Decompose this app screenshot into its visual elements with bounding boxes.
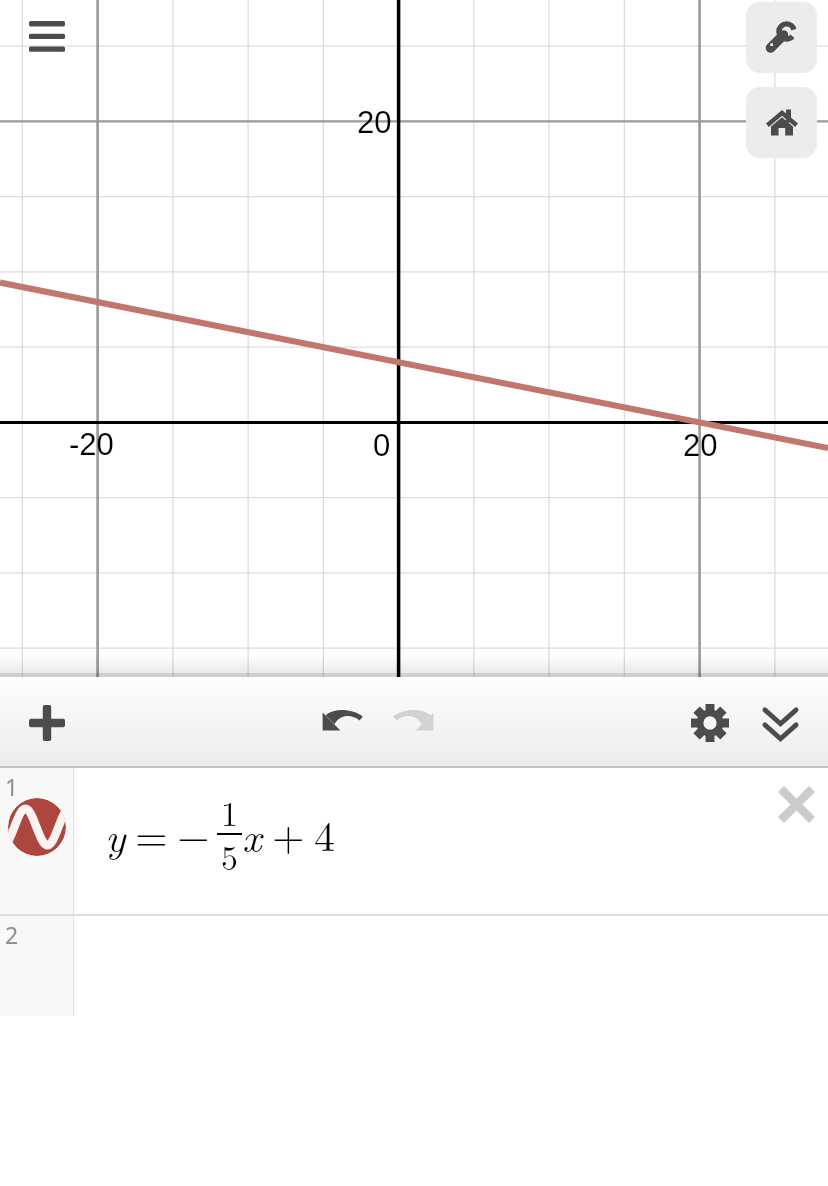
- staticText: 20: [683, 428, 718, 463]
- button[interactable]: Home: [746, 87, 817, 158]
- staticText: 0: [373, 428, 391, 463]
- staticText: x: [242, 805, 262, 864]
- staticText: −: [177, 804, 210, 864]
- button[interactable]: Collapse keypad: [738, 681, 822, 765]
- staticText: =: [135, 804, 168, 864]
- button[interactable]: Delete expression: [764, 772, 828, 836]
- button[interactable]: 2: [0, 916, 828, 1016]
- staticText: 5: [221, 832, 238, 880]
- staticText: 4: [314, 804, 336, 864]
- button[interactable]: Settings: [746, 2, 817, 73]
- button[interactable]: Graph settings: [668, 681, 752, 765]
- staticText: 1: [221, 788, 238, 836]
- staticText: 1: [5, 771, 19, 802]
- button[interactable]: Undo: [300, 678, 384, 762]
- staticText: 2: [5, 919, 19, 950]
- staticText: 20: [357, 105, 392, 140]
- button[interactable]: Redo: [371, 678, 455, 762]
- staticText: +: [272, 804, 305, 864]
- staticText: -20: [69, 427, 114, 462]
- staticText: y: [105, 805, 126, 864]
- button[interactable]: Menu: [0, 0, 94, 72]
- button[interactable]: 1: [0, 768, 828, 916]
- button[interactable]: Add expression: [4, 680, 89, 765]
